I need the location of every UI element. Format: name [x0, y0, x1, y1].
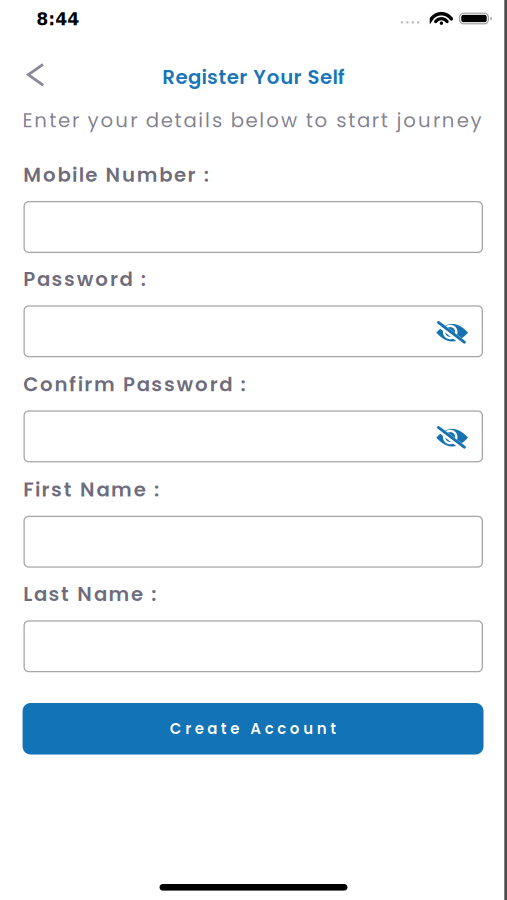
staticText: Mobile Number : — [23, 161, 209, 189]
button[interactable]: Show password — [432, 311, 472, 351]
staticText: First Name : — [23, 476, 159, 503]
button[interactable]: Back — [14, 53, 58, 97]
button[interactable]: Create Account — [23, 703, 483, 754]
staticText: Last Name : — [23, 580, 156, 608]
staticText: Register Your Self — [162, 63, 345, 91]
staticText: Enter your details below to start journe… — [22, 107, 481, 134]
staticText: Create Account — [170, 718, 336, 739]
staticText: Confirm Password : — [23, 370, 245, 398]
staticText: 8:44 — [36, 9, 79, 29]
button[interactable]: Show confirm password — [432, 416, 472, 456]
staticText: Password : — [23, 265, 146, 293]
